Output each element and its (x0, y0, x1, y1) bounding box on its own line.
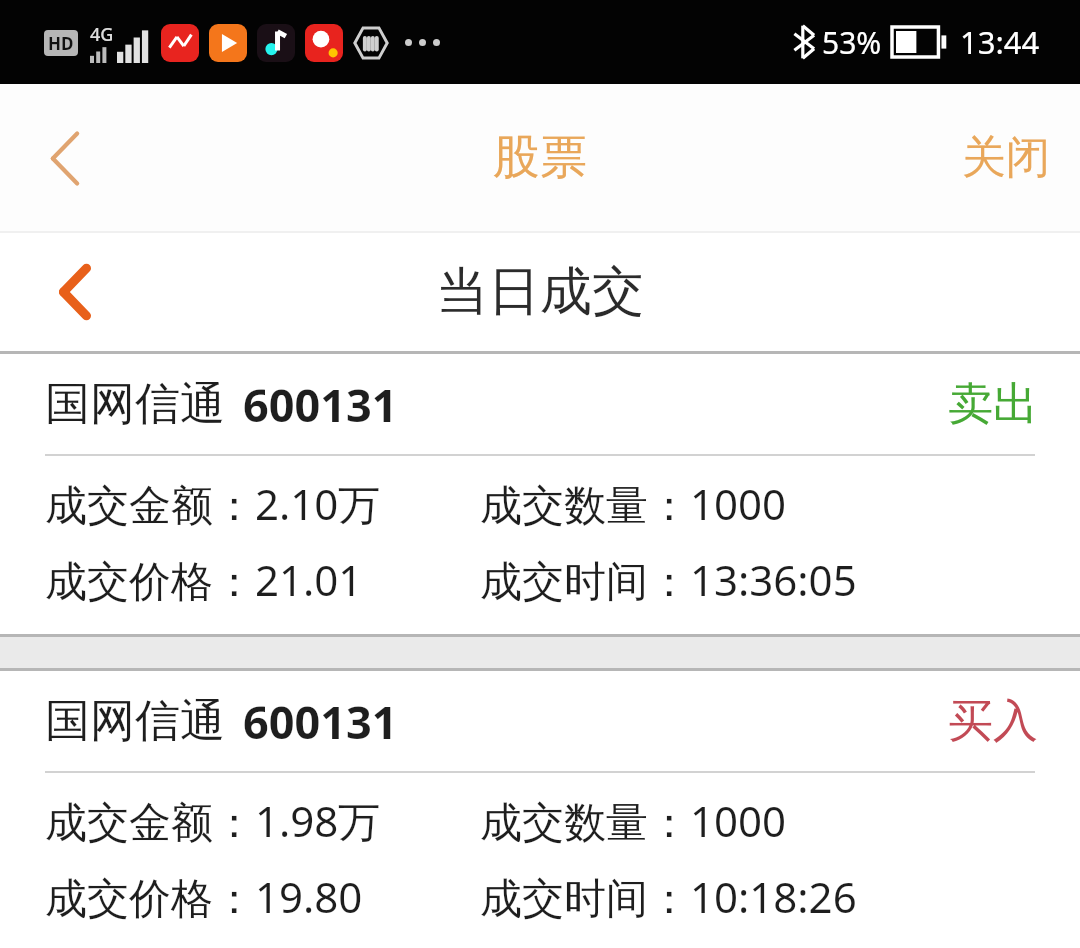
staticText: HD (48, 32, 74, 55)
staticText: 买入 (948, 693, 1038, 750)
staticText: 卖出 (948, 376, 1038, 433)
staticText: 国网信通 (45, 376, 225, 433)
staticText: 关闭 (962, 130, 1050, 185)
staticText: 53% (822, 22, 882, 63)
button[interactable]: 返回 (22, 108, 108, 208)
button[interactable]: 国网信通 (0, 354, 1080, 634)
staticText: 当日成交 (436, 259, 644, 325)
staticText: 600131 (243, 374, 398, 435)
staticText: 600131 (243, 691, 398, 752)
button[interactable]: 关闭 (962, 130, 1050, 185)
staticText: 成交价格：21.01 (45, 551, 363, 608)
staticText: 成交金额：2.10万 (45, 475, 381, 532)
button[interactable]: 国网信通 (0, 671, 1080, 948)
staticText: 4G (90, 22, 114, 47)
staticText: 成交时间：10:18:26 (480, 868, 857, 925)
staticText: 13:44 (960, 21, 1040, 63)
staticText: 成交数量：1000 (480, 792, 787, 849)
button[interactable]: 返回 (30, 244, 120, 340)
staticText: 成交数量：1000 (480, 475, 787, 532)
staticText: 股票 (493, 128, 587, 187)
staticText: 国网信通 (45, 693, 225, 750)
staticText: 成交价格：19.80 (45, 868, 363, 925)
staticText: 成交金额：1.98万 (45, 792, 381, 849)
staticText: 成交时间：13:36:05 (480, 551, 857, 608)
